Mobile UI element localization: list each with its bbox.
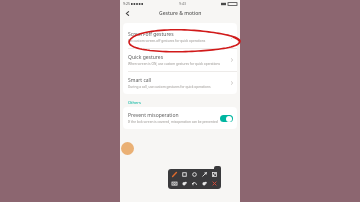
staticText: When screen is ON, use custom gestures f… — [128, 62, 220, 66]
button[interactable]: Back — [123, 9, 132, 18]
button[interactable]: Collapse toolbar — [214, 166, 221, 172]
button[interactable]: Ellipse — [191, 171, 198, 178]
button[interactable]: Quick gestures — [123, 49, 237, 71]
staticText: Smart call — [128, 77, 152, 84]
button[interactable]: Prevent misoperation — [123, 107, 237, 129]
button[interactable]: Prevent misoperation toggle — [220, 115, 233, 122]
staticText: 9:25 — [123, 1, 130, 6]
button[interactable]: Pen — [171, 171, 178, 178]
staticText: If the lock screen is covered, misoperat… — [128, 120, 218, 124]
staticText: Screen-off gestures — [128, 31, 174, 38]
staticText: Gesture & motion — [159, 10, 202, 17]
staticText: 9:43 — [179, 1, 186, 6]
staticText: Quick gestures — [128, 54, 164, 61]
button[interactable]: Arrow — [201, 171, 208, 178]
button[interactable]: Mosaic — [211, 171, 218, 178]
button[interactable]: Smart call — [123, 72, 237, 94]
staticText: During a call, use custom gestures for q… — [128, 85, 211, 89]
staticText: Others — [128, 100, 141, 105]
button[interactable]: Eraser — [181, 180, 188, 187]
button[interactable]: Screen-off gestures — [123, 23, 237, 48]
button[interactable]: Rectangle — [181, 171, 188, 178]
staticText: Set custom screen-off gestures for quick… — [128, 39, 206, 43]
button[interactable]: Undo — [191, 180, 198, 187]
button[interactable]: Palette — [201, 180, 208, 187]
staticText: Prevent misoperation — [128, 112, 179, 119]
button[interactable]: Screenshot — [171, 180, 178, 187]
button[interactable]: Close — [211, 180, 218, 187]
